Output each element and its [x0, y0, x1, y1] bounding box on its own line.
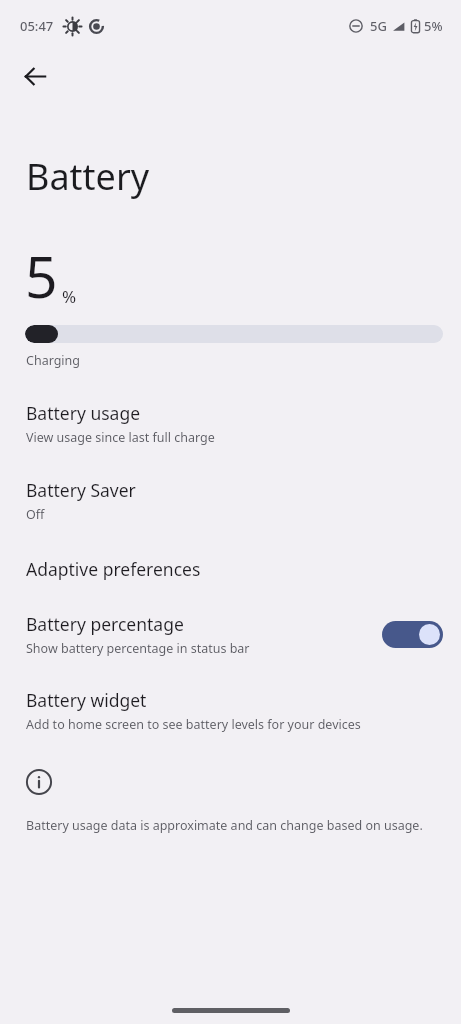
staticText: %	[62, 285, 77, 308]
staticText: 5G	[370, 17, 387, 35]
staticText: Off	[26, 506, 45, 523]
staticText: Battery widget	[26, 688, 147, 712]
button[interactable]: Battery widget	[0, 688, 461, 733]
staticText: 5	[25, 237, 58, 315]
staticText: Battery percentage	[26, 612, 184, 636]
staticText: Battery	[26, 152, 150, 201]
staticText: View usage since last full charge	[26, 429, 215, 446]
staticText: 05:47	[20, 17, 54, 35]
staticText: Charging	[26, 352, 81, 369]
staticText: Add to home screen to see battery levels…	[26, 716, 361, 733]
staticText: Battery usage data is approximate and ca…	[26, 817, 423, 834]
staticText: Battery usage	[26, 401, 141, 425]
button[interactable]: Back	[11, 52, 59, 100]
staticText: Show battery percentage in status bar	[26, 640, 250, 657]
button[interactable]: Battery percentage	[0, 612, 461, 657]
button[interactable]: Battery Saver	[0, 478, 461, 523]
staticText: Adaptive preferences	[26, 557, 201, 581]
staticText: Battery Saver	[26, 478, 136, 502]
staticText: 5%	[424, 17, 443, 35]
button[interactable]: Battery usage	[0, 401, 461, 446]
other: Information	[26, 769, 52, 795]
